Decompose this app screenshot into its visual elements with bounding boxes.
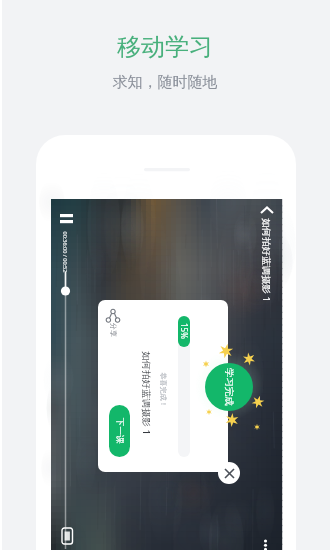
button[interactable]: Lock screen — [57, 525, 77, 545]
button[interactable]: More options — [257, 533, 274, 550]
button[interactable] — [109, 405, 130, 457]
button[interactable]: Back — [256, 204, 278, 226]
button[interactable]: Close — [218, 462, 240, 484]
button[interactable]: Menu — [55, 209, 79, 233]
button[interactable] — [205, 363, 253, 411]
